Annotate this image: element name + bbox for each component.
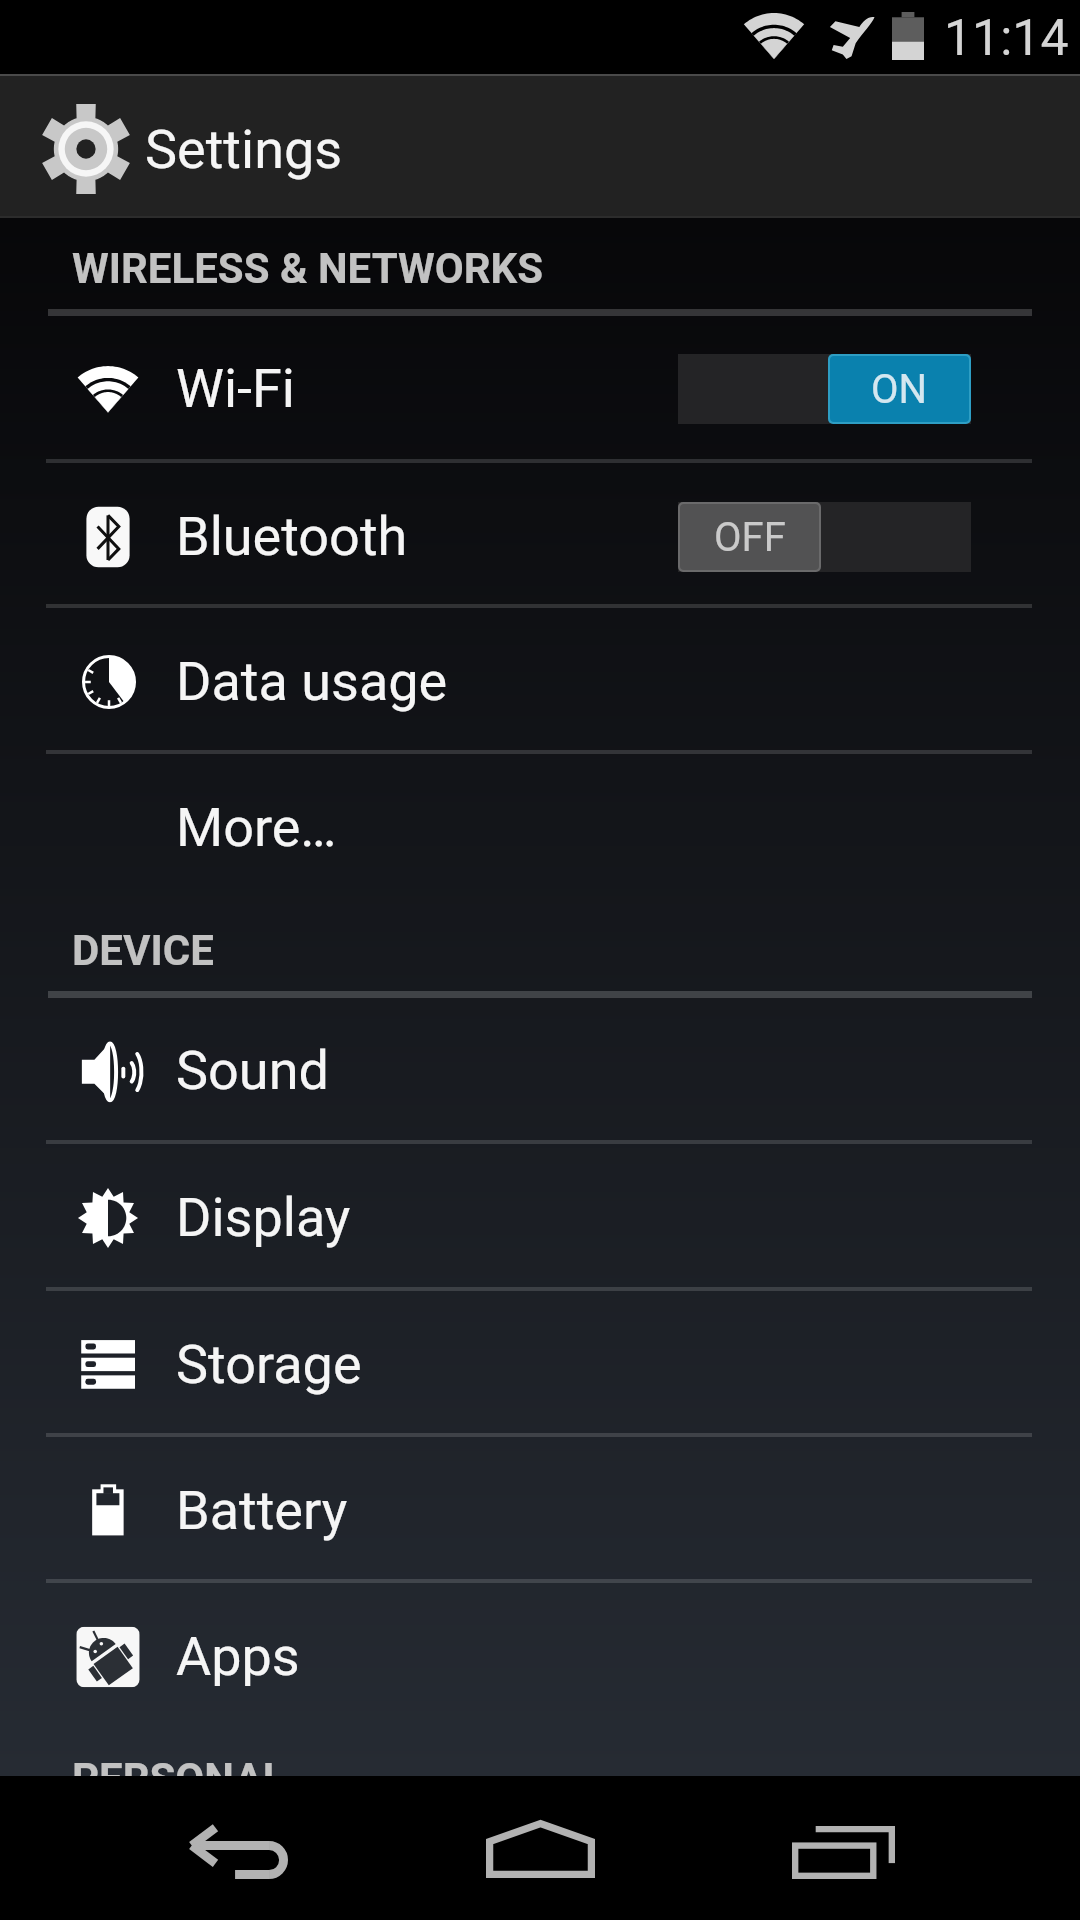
button[interactable]: ON	[678, 354, 971, 424]
staticText: Data usage	[176, 650, 448, 713]
staticText: DEVICE	[72, 926, 214, 975]
button[interactable]: Display	[0, 1145, 1080, 1290]
staticText: ON	[871, 366, 928, 413]
button[interactable]: Storage	[0, 1292, 1080, 1437]
button[interactable]: Wi-Fi	[0, 316, 1080, 461]
button[interactable]: Sound	[0, 998, 1080, 1143]
staticText: Apps	[176, 1625, 300, 1688]
staticText: Settings	[145, 118, 343, 181]
button[interactable]: More…	[0, 755, 1080, 900]
staticText: Bluetooth	[176, 505, 408, 568]
staticText: Display	[176, 1186, 351, 1249]
staticText: More…	[176, 796, 337, 859]
button[interactable]: Recent apps	[720, 1776, 1080, 1920]
button[interactable]: Apps	[0, 1584, 1080, 1729]
staticText: WIRELESS & NETWORKS	[72, 244, 543, 293]
button[interactable]: Data usage	[0, 609, 1080, 754]
staticText: 11:14	[944, 9, 1069, 68]
button[interactable]: Back	[0, 1776, 360, 1920]
button[interactable]: Battery	[0, 1438, 1080, 1583]
button[interactable]: Bluetooth	[0, 464, 1080, 609]
button[interactable]: Home	[360, 1776, 720, 1920]
staticText: Battery	[176, 1479, 348, 1542]
staticText: Storage	[176, 1333, 362, 1396]
staticText: Sound	[176, 1039, 329, 1102]
button[interactable]: Settings	[0, 76, 1080, 218]
button[interactable]: OFF	[678, 502, 971, 572]
staticText: PERSONAL	[72, 1754, 286, 1803]
staticText: Wi-Fi	[176, 357, 295, 420]
staticText: OFF	[714, 514, 786, 561]
